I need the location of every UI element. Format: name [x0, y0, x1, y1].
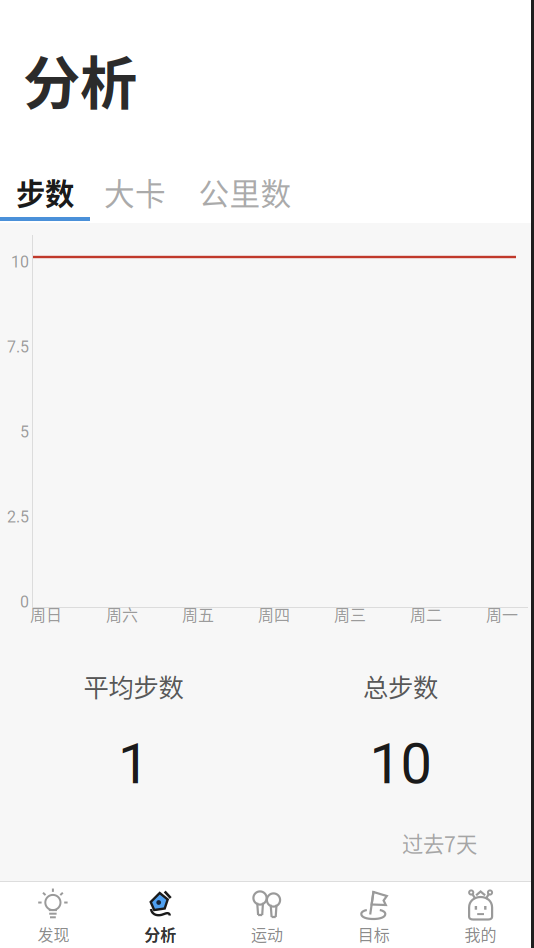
staticText: 目标 — [358, 922, 390, 946]
button[interactable]: 我的 — [427, 879, 534, 948]
button[interactable]: 步数 — [0, 167, 90, 221]
button[interactable]: 运动 — [214, 879, 320, 948]
staticText: 过去7天 — [402, 828, 477, 858]
staticText: 5 — [20, 423, 29, 441]
button[interactable]: 分析 — [23, 48, 183, 110]
button[interactable]: 大卡 — [97, 167, 173, 217]
staticText: 总步数 — [363, 668, 438, 704]
staticText: 公里数 — [198, 170, 291, 214]
button[interactable]: 分析 — [107, 879, 214, 948]
staticText: 大卡 — [104, 170, 166, 214]
staticText: 10 — [11, 253, 29, 271]
staticText: 周四 — [258, 602, 290, 626]
staticText: 0 — [20, 593, 29, 611]
staticText: 步数 — [16, 171, 74, 213]
staticText: 平均步数 — [83, 668, 183, 704]
staticText: 分析 — [144, 922, 176, 946]
staticText: 1 — [118, 731, 149, 797]
button[interactable]: 发现 — [0, 879, 107, 948]
staticText: 发现 — [37, 922, 69, 946]
staticText: 周三 — [334, 602, 366, 626]
staticText: 周五 — [182, 602, 214, 626]
staticText: 分析 — [23, 37, 137, 120]
staticText: 运动 — [251, 922, 283, 946]
staticText: 7.5 — [7, 338, 29, 356]
staticText: 我的 — [465, 922, 497, 946]
staticText: 周日 — [30, 602, 62, 626]
staticText: 周一 — [486, 602, 518, 626]
staticText: 周二 — [410, 602, 442, 626]
staticText: 10 — [369, 731, 431, 797]
button[interactable]: 公里数 — [190, 167, 300, 217]
staticText: 2.5 — [7, 508, 29, 526]
staticText: 周六 — [106, 602, 138, 626]
button[interactable]: 目标 — [320, 879, 427, 948]
